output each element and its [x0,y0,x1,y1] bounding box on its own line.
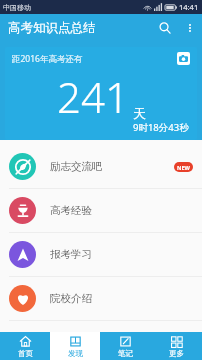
staticText: 中国移动 [3,3,31,12]
staticText: 241 [57,68,129,125]
staticText: 励志交流吧 [50,160,103,173]
button[interactable]: Search [152,15,178,41]
button[interactable]: 笔记 [100,332,151,360]
staticText: 距2016年高考还有 [12,53,83,65]
button[interactable]: 距2016年高考还有 [5,47,197,140]
staticText: 9时18分43秒 [133,121,189,134]
button[interactable]: 高考经验 [0,189,202,232]
staticText: 高考知识点总结 [8,20,96,36]
staticText: 院校介绍 [50,292,92,305]
button[interactable]: Camera [177,52,190,65]
button[interactable]: 报考学习 [0,233,202,276]
button[interactable]: 院校介绍 [0,277,202,320]
button[interactable]: 励志交流吧 [0,145,202,188]
staticText: 高考经验 [50,204,92,217]
staticText: 天 [133,105,146,121]
staticText: 报考学习 [50,248,92,261]
button[interactable]: 更多 [151,332,202,360]
staticText: 笔记 [118,349,133,358]
button[interactable]: 首页 [0,332,50,360]
staticText: NEW [177,164,190,171]
staticText: 更多 [169,349,184,358]
button[interactable]: More options [178,16,202,40]
staticText: 首页 [18,349,33,358]
button[interactable]: 发现 [50,332,100,360]
staticText: 发现 [68,349,83,358]
staticText: 14:41 [179,2,199,12]
